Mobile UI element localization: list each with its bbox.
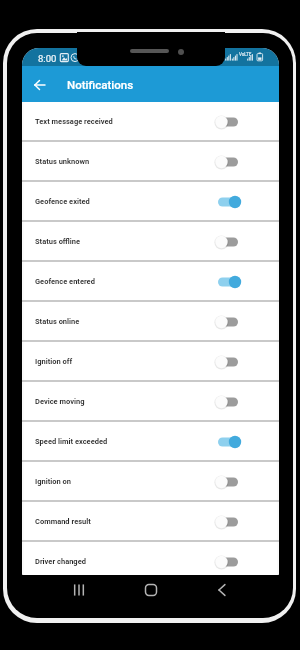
button[interactable] (216, 194, 242, 210)
button[interactable] (216, 394, 242, 410)
button[interactable]: Back (28, 75, 48, 95)
button[interactable]: Geofence entered (22, 262, 279, 302)
staticText: Notifications (67, 78, 134, 91)
button[interactable] (216, 474, 242, 490)
button[interactable]: Ignition on (22, 462, 279, 502)
button[interactable]: Status online (22, 302, 279, 342)
button[interactable]: Command result (22, 502, 279, 542)
staticText: VoLTE (239, 52, 252, 57)
button[interactable]: Home (142, 581, 160, 599)
button[interactable]: Text message received (22, 102, 279, 142)
staticText: Ignition off (35, 357, 73, 366)
button[interactable] (216, 434, 242, 450)
staticText: Geofence entered (35, 277, 95, 286)
staticText: Status unknown (35, 157, 90, 166)
button[interactable] (216, 274, 242, 290)
staticText: Command result (35, 517, 91, 526)
staticText: Speed limit exceeded (35, 437, 108, 446)
button[interactable] (216, 154, 242, 170)
staticText: Device moving (35, 397, 85, 406)
button[interactable]: Driver changed (22, 542, 279, 576)
button[interactable] (216, 354, 242, 370)
button[interactable]: Speed limit exceeded (22, 422, 279, 462)
button[interactable]: Status offline (22, 222, 279, 262)
button[interactable]: Recents (70, 581, 88, 599)
button[interactable] (216, 234, 242, 250)
staticText: 8:00 (38, 53, 57, 64)
button[interactable]: Device moving (22, 382, 279, 422)
button[interactable]: Back (215, 581, 233, 599)
button[interactable] (216, 314, 242, 330)
staticText: Text message received (35, 117, 113, 126)
button[interactable] (216, 554, 242, 570)
button[interactable]: Ignition off (22, 342, 279, 382)
staticText: Status offline (35, 237, 81, 246)
button[interactable]: Geofence exited (22, 182, 279, 222)
button[interactable]: Status unknown (22, 142, 279, 182)
button[interactable] (216, 114, 242, 130)
staticText: Driver changed (35, 557, 86, 566)
staticText: Geofence exited (35, 197, 90, 206)
button[interactable] (216, 514, 242, 530)
staticText: Ignition on (35, 477, 71, 486)
staticText: Status online (35, 317, 80, 326)
